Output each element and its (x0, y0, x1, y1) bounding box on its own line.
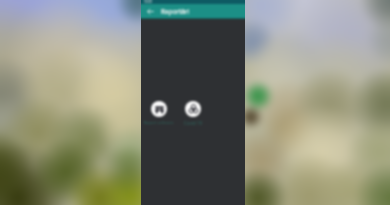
staticText: Covid 19 (177, 120, 209, 126)
button[interactable]: Raport utilizare (142, 101, 175, 126)
staticText: Raport utilizare (142, 120, 175, 126)
staticText: Raportări (161, 7, 190, 16)
button[interactable]: Back (144, 5, 157, 18)
staticText: 14:32 (144, 0, 153, 4)
button[interactable]: Covid 19 (177, 101, 209, 126)
